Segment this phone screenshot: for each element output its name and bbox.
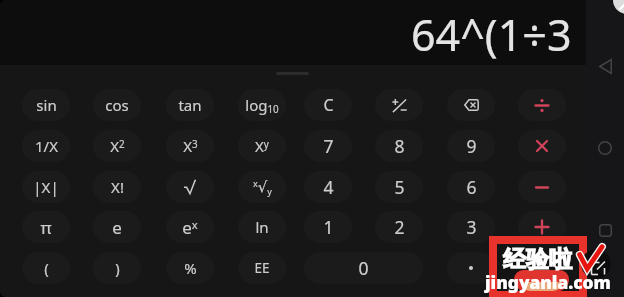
- button[interactable]: π: [22, 211, 70, 243]
- button[interactable]: Minus: [518, 171, 566, 203]
- staticText: 9: [466, 134, 477, 158]
- button[interactable]: ): [93, 252, 141, 284]
- staticText: ): [115, 258, 120, 278]
- staticText: X2: [110, 136, 125, 156]
- button[interactable]: Divide: [518, 89, 566, 121]
- staticText: 7: [323, 134, 334, 158]
- staticText: sin: [36, 95, 57, 115]
- button[interactable]: cos: [93, 89, 141, 121]
- staticText: |X|: [33, 177, 59, 197]
- staticText: ex: [182, 216, 198, 239]
- button[interactable]: 2: [375, 211, 423, 243]
- staticText: Xy: [255, 136, 269, 156]
- button[interactable]: ex: [166, 211, 214, 243]
- staticText: tan: [178, 95, 202, 115]
- staticText: ln: [255, 217, 269, 237]
- button[interactable]: EE: [238, 252, 286, 284]
- staticText: EE: [254, 259, 270, 277]
- staticText: 1/X: [35, 136, 58, 156]
- button[interactable]: Square root: [166, 171, 214, 203]
- button[interactable]: (: [22, 252, 70, 284]
- staticText: 1: [323, 215, 334, 239]
- staticText: 4: [323, 175, 334, 199]
- button[interactable]: X3: [166, 130, 214, 162]
- staticText: X!: [111, 177, 124, 197]
- staticText: 经验啦: [503, 245, 572, 274]
- staticText: e: [112, 216, 122, 239]
- button[interactable]: Back: [586, 47, 624, 85]
- button[interactable]: Xy: [238, 130, 286, 162]
- button[interactable]: 5: [375, 171, 423, 203]
- staticText: x√y: [253, 177, 272, 197]
- button[interactable]: C: [304, 89, 352, 121]
- button[interactable]: 8: [375, 130, 423, 162]
- staticText: 3: [466, 215, 477, 239]
- button[interactable]: 6: [447, 171, 495, 203]
- staticText: 2: [394, 215, 405, 239]
- button[interactable]: sin: [22, 89, 70, 121]
- button[interactable]: Backspace: [447, 89, 495, 121]
- button[interactable]: |X|: [22, 171, 70, 203]
- button[interactable]: Plus minus: [375, 89, 423, 121]
- button[interactable]: Home: [586, 129, 624, 167]
- staticText: 8: [394, 134, 405, 158]
- staticText: (: [44, 258, 49, 278]
- button[interactable]: tan: [166, 89, 214, 121]
- button[interactable]: 0: [304, 252, 423, 284]
- button[interactable]: log10: [238, 89, 286, 121]
- button[interactable]: 7: [304, 130, 352, 162]
- staticText: 6: [466, 175, 477, 199]
- button[interactable]: 3: [447, 211, 495, 243]
- button[interactable]: 1: [304, 211, 352, 243]
- button[interactable]: Decimal point: [447, 252, 495, 284]
- button[interactable]: X2: [93, 130, 141, 162]
- staticText: 5: [394, 175, 405, 199]
- button[interactable]: X!: [93, 171, 141, 203]
- staticText: %: [184, 258, 197, 278]
- staticText: 64^(1÷3: [411, 5, 572, 64]
- staticText: π: [40, 216, 52, 239]
- staticText: jingyanla.com: [485, 271, 611, 295]
- staticText: cos: [105, 95, 129, 115]
- button[interactable]: Multiply: [518, 130, 566, 162]
- button[interactable]: 1/X: [22, 130, 70, 162]
- button[interactable]: e: [93, 211, 141, 243]
- button[interactable]: ln: [238, 211, 286, 243]
- button[interactable]: 4: [304, 171, 352, 203]
- button[interactable]: Recent apps: [586, 211, 624, 249]
- staticText: X3: [183, 136, 198, 156]
- staticText: 0: [358, 256, 369, 280]
- button[interactable]: %: [166, 252, 214, 284]
- button[interactable]: x√y: [238, 171, 286, 203]
- staticText: log10: [245, 95, 279, 116]
- button[interactable]: Plus: [518, 211, 566, 243]
- staticText: C: [323, 94, 334, 116]
- button[interactable]: 9: [447, 130, 495, 162]
- button[interactable]: Equals: [518, 252, 566, 284]
